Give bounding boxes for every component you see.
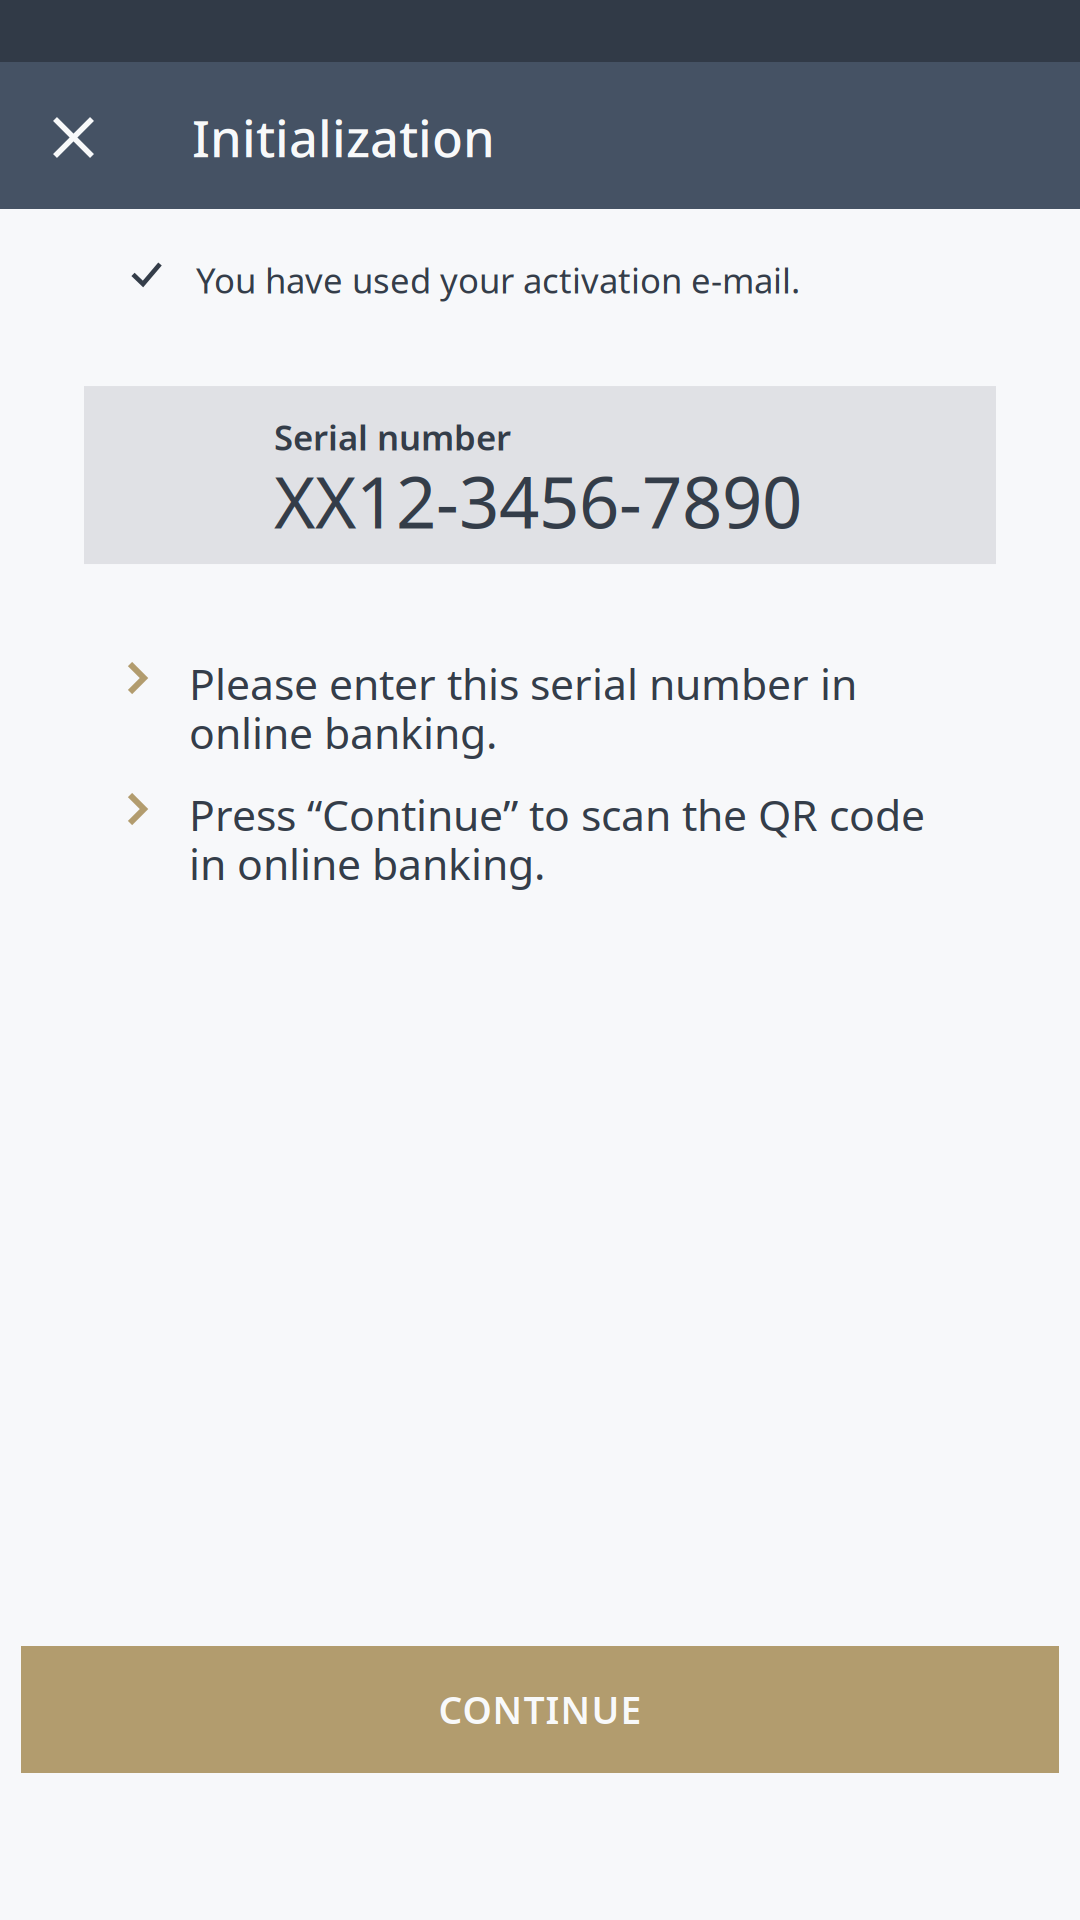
staticText: online banking. (189, 704, 497, 761)
staticText: XX12-3456-7890 (274, 454, 802, 548)
staticText: Please enter this serial number in (189, 655, 857, 712)
staticText: CONTINUE (438, 1685, 641, 1734)
staticText: Initialization (192, 104, 495, 171)
button[interactable]: CONTINUE (21, 1646, 1059, 1773)
staticText: You have used your activation e-mail. (196, 257, 800, 303)
staticText: in online banking. (189, 835, 545, 892)
button[interactable]: Close (0, 62, 147, 209)
staticText: Press “Continue” to scan the QR code (189, 786, 925, 843)
staticText: Serial number (274, 414, 511, 460)
